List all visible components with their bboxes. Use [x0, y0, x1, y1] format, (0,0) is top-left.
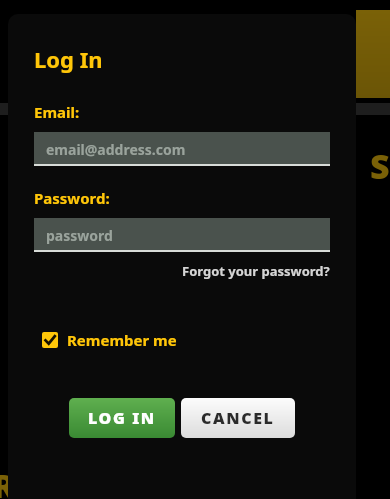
- staticText: password: [46, 226, 113, 245]
- staticText: Log In: [34, 44, 103, 74]
- staticText: LOG IN: [88, 407, 156, 429]
- button[interactable]: CANCEL: [181, 398, 295, 438]
- staticText: RK?: [0, 464, 53, 499]
- staticText: email@address.com: [46, 140, 186, 159]
- staticText: S: [370, 143, 390, 189]
- button[interactable]: Remember me: [38, 326, 181, 354]
- button[interactable]: LOG IN: [69, 398, 175, 438]
- staticText: Forgot your password?: [182, 262, 330, 280]
- button[interactable]: Forgot your password?: [180, 260, 332, 282]
- staticText: Email:: [34, 102, 80, 122]
- button[interactable]: password: [34, 218, 330, 252]
- button[interactable]: email@address.com: [34, 132, 330, 166]
- staticText: Remember me: [67, 330, 177, 350]
- staticText: Password:: [34, 188, 110, 208]
- staticText: CANCEL: [201, 407, 275, 429]
